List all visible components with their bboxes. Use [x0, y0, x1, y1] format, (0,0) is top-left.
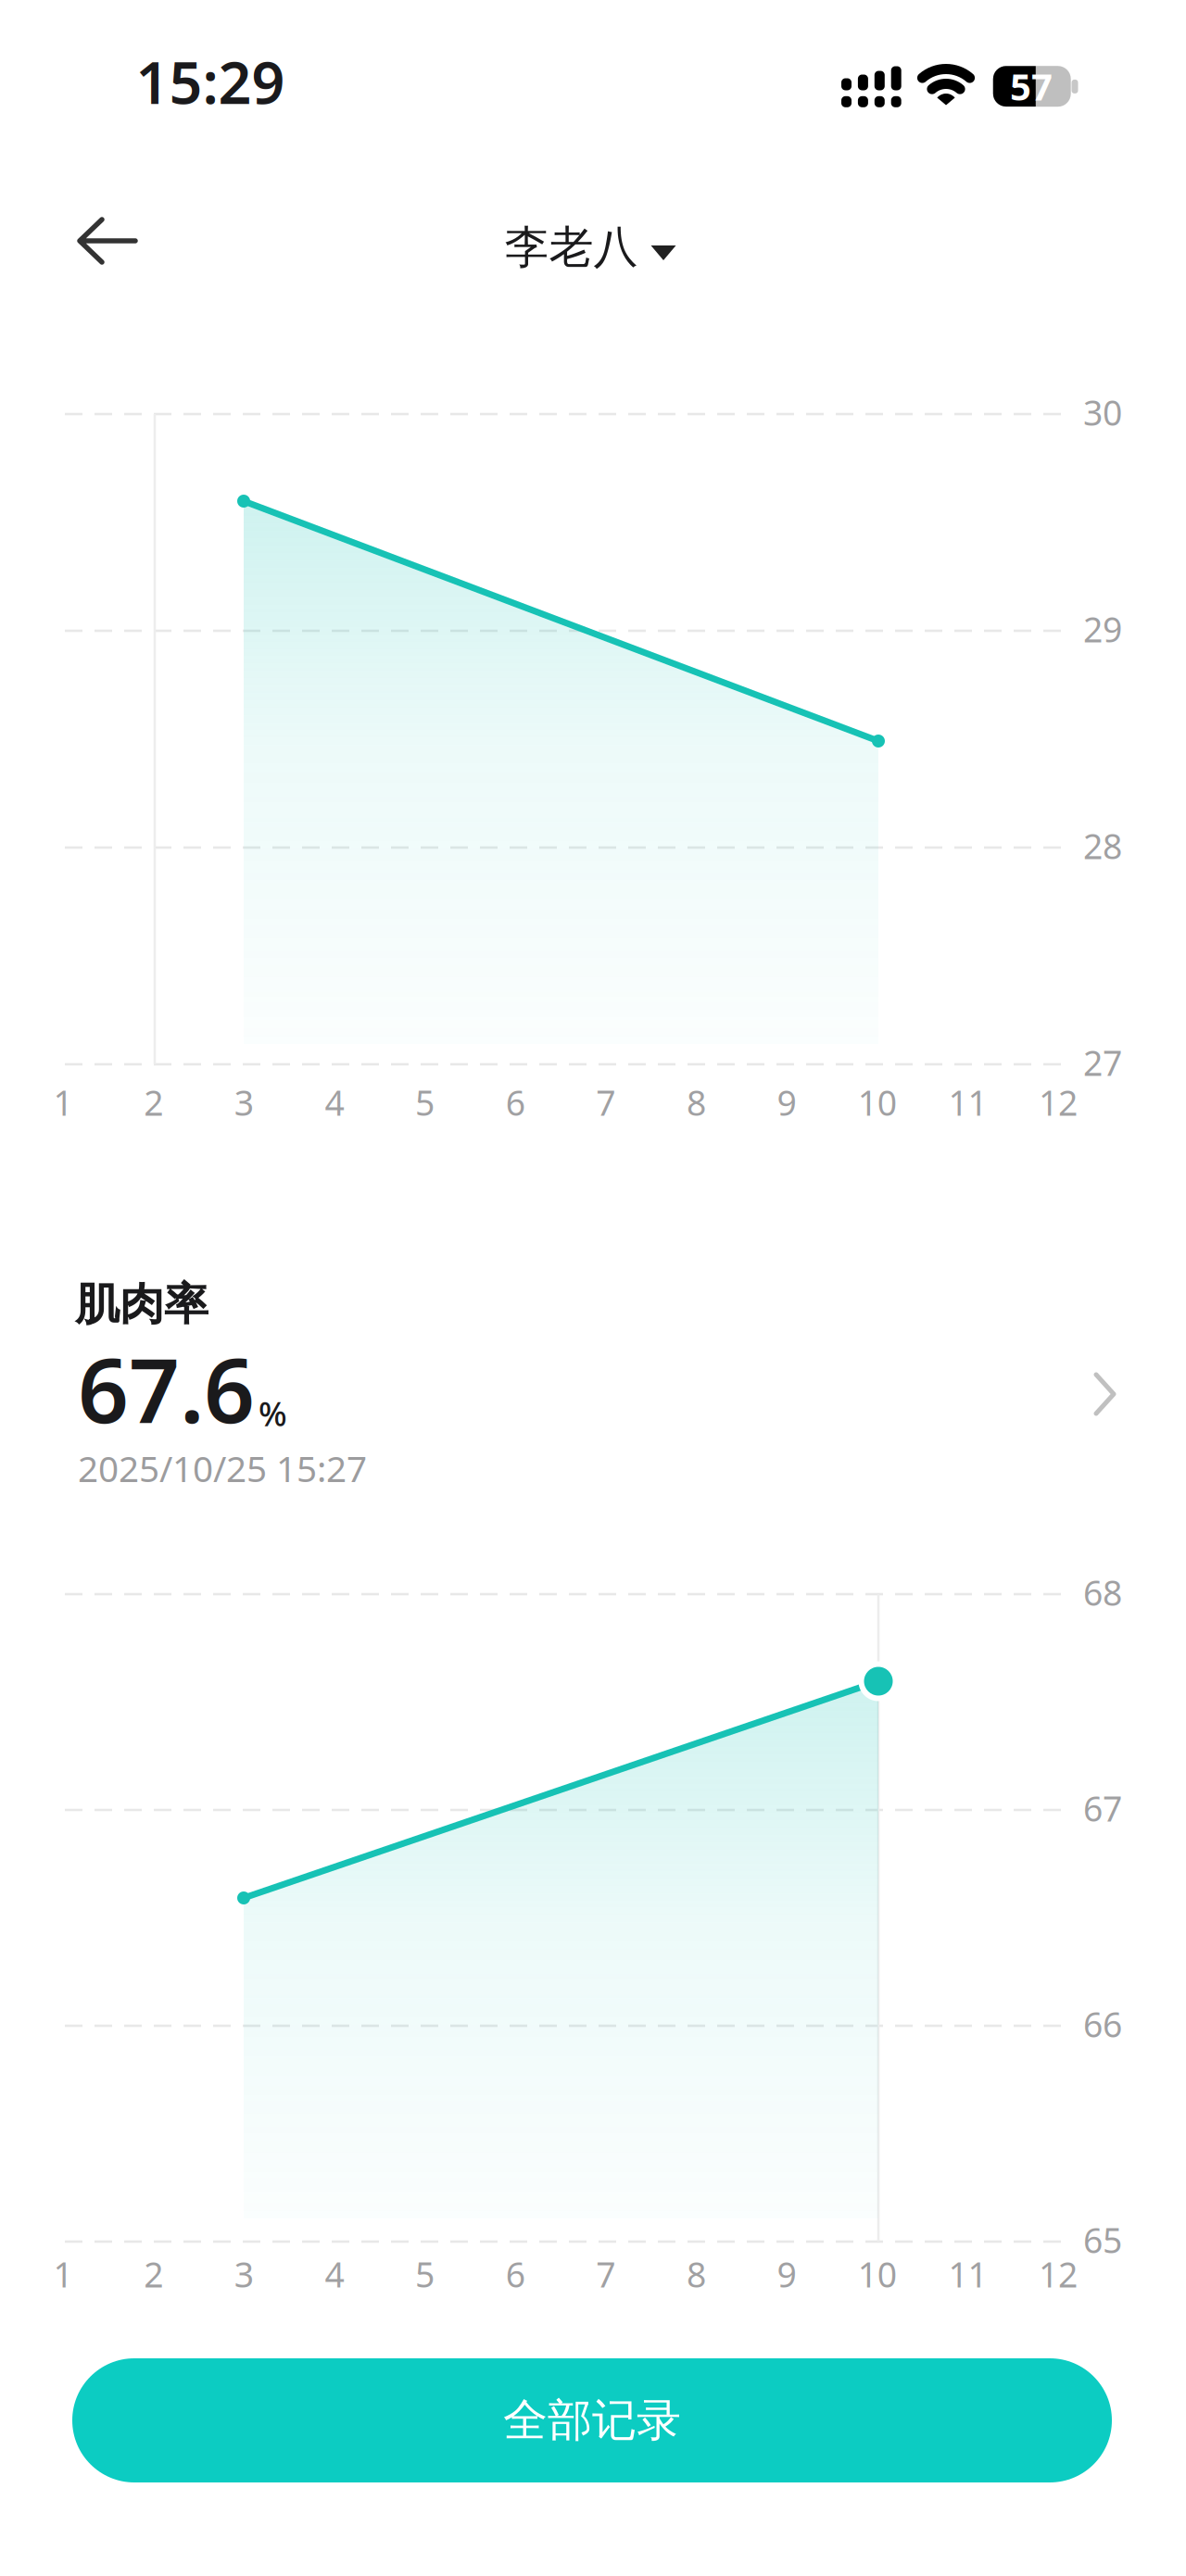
staticText: 57 [1010, 62, 1053, 111]
staticText: 3 [234, 2251, 254, 2297]
staticText: 1 [53, 2251, 73, 2297]
staticText: 6 [506, 1079, 525, 1125]
staticText: 15:29 [136, 43, 285, 120]
staticText: 8 [687, 2251, 706, 2297]
staticText: 李老八 [505, 220, 638, 275]
staticText: 67.6 [78, 1329, 255, 1448]
staticText: 9 [777, 2251, 796, 2297]
staticText: 30 [1083, 389, 1122, 435]
staticText: 2 [144, 2251, 163, 2297]
button[interactable]: 全部记录 [72, 2358, 1112, 2482]
staticText: 28 [1083, 823, 1122, 869]
button[interactable]: 肌肉率 [0, 1250, 1186, 1519]
staticText: 2 [144, 1079, 163, 1125]
staticText: 9 [777, 1079, 796, 1125]
staticText: 12 [1039, 2251, 1078, 2297]
staticText: 2025/10/25 15:27 [78, 1444, 367, 1492]
staticText: 6 [506, 2251, 525, 2297]
staticText: 7 [596, 1079, 616, 1125]
staticText: 4 [325, 2251, 344, 2297]
staticText: 4 [325, 1079, 344, 1125]
staticText: 29 [1083, 606, 1122, 652]
staticText: 5 [415, 2251, 435, 2297]
staticText: 3 [234, 1079, 254, 1125]
staticText: 27 [1083, 1039, 1122, 1085]
staticText: 10 [858, 2251, 897, 2297]
staticText: 5 [415, 1079, 435, 1125]
staticText: 67 [1083, 1785, 1122, 1831]
staticText: % [259, 1391, 287, 1435]
button[interactable]: Switch member [505, 220, 676, 275]
staticText: 7 [596, 2251, 616, 2297]
staticText: 8 [687, 1079, 706, 1125]
staticText: 68 [1083, 1569, 1122, 1615]
staticText: 66 [1083, 2001, 1122, 2047]
staticText: 65 [1083, 2217, 1122, 2263]
staticText: 12 [1039, 1079, 1078, 1125]
staticText: 肌肉率 [75, 1277, 208, 1332]
staticText: 11 [948, 1079, 987, 1125]
staticText: 1 [53, 1079, 73, 1125]
staticText: 10 [858, 1079, 897, 1125]
staticText: 全部记录 [503, 2393, 681, 2448]
button[interactable]: Back [78, 220, 137, 262]
staticText: 11 [948, 2251, 987, 2297]
